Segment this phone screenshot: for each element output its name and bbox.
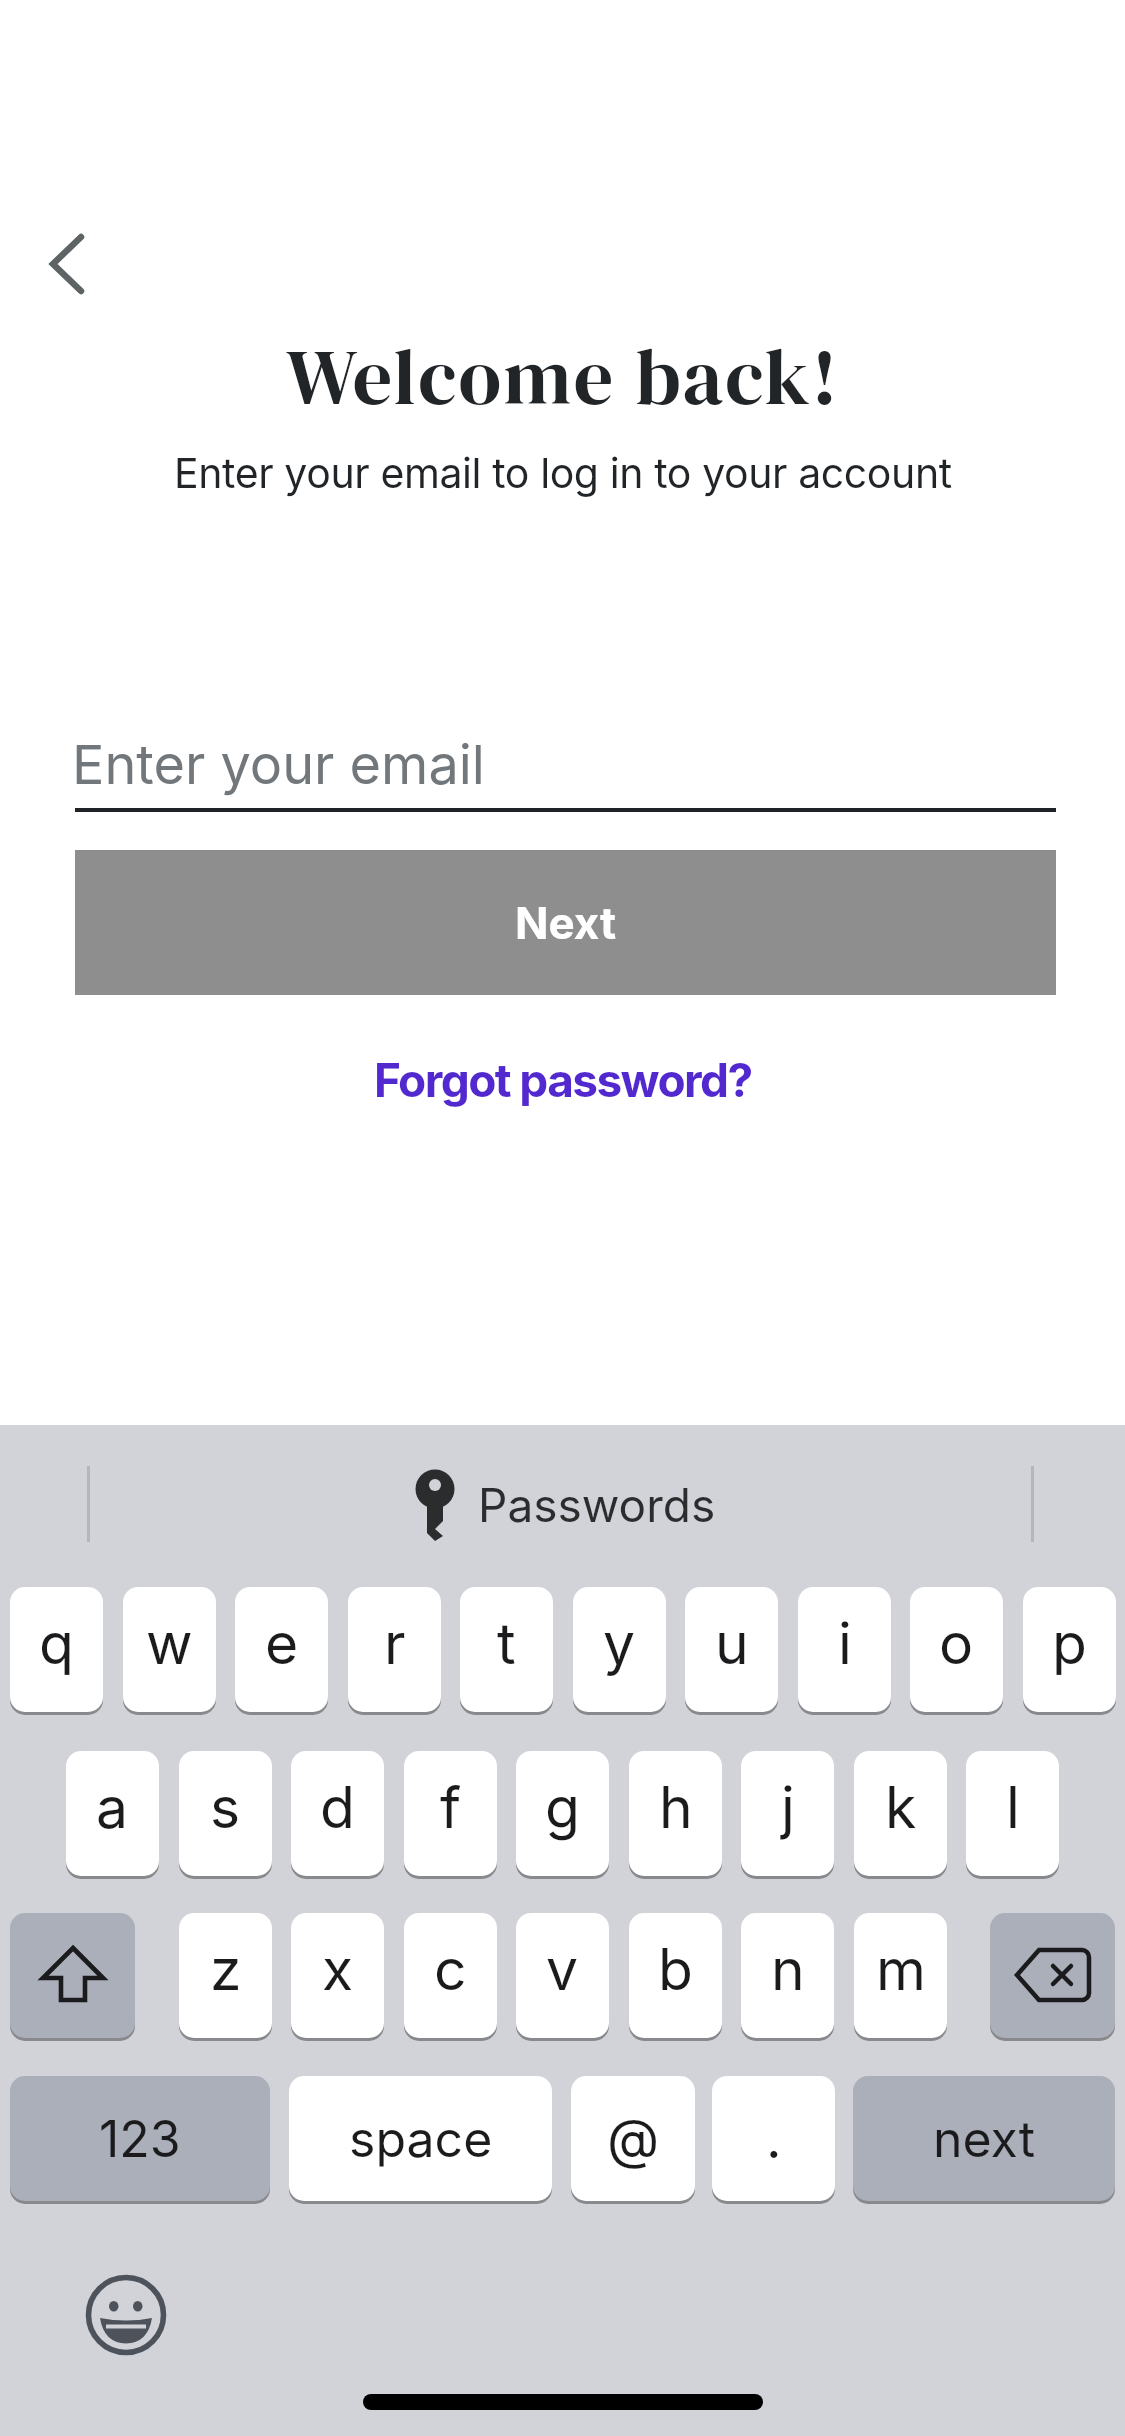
staticText: k bbox=[885, 1773, 917, 1842]
staticText: n bbox=[771, 1935, 805, 2004]
button[interactable]: u bbox=[685, 1587, 778, 1712]
staticText: c bbox=[434, 1935, 467, 2004]
button[interactable]: @ bbox=[571, 2076, 695, 2201]
button[interactable]: z bbox=[179, 1913, 272, 2038]
button[interactable]: x bbox=[291, 1913, 384, 2038]
staticText: y bbox=[603, 1609, 636, 1678]
staticText: space bbox=[349, 2109, 493, 2169]
button[interactable]: c bbox=[404, 1913, 497, 2038]
button[interactable]: k bbox=[854, 1751, 947, 1876]
button[interactable]: e bbox=[235, 1587, 328, 1712]
staticText: q bbox=[39, 1609, 74, 1678]
staticText: h bbox=[659, 1773, 693, 1842]
button[interactable]: Passwords bbox=[0, 1455, 1125, 1555]
button[interactable]: h bbox=[629, 1751, 722, 1876]
staticText: e bbox=[265, 1609, 299, 1678]
button[interactable]: y bbox=[573, 1587, 666, 1712]
staticText: t bbox=[497, 1609, 516, 1678]
staticText: 123 bbox=[99, 2109, 181, 2169]
button[interactable] bbox=[990, 1913, 1115, 2038]
button[interactable]: g bbox=[516, 1751, 609, 1876]
staticText: Welcome back! bbox=[286, 323, 840, 430]
staticText: v bbox=[546, 1935, 579, 2004]
button[interactable]: m bbox=[854, 1913, 947, 2038]
staticText: d bbox=[320, 1773, 355, 1842]
staticText: j bbox=[781, 1773, 795, 1842]
button[interactable]: p bbox=[1023, 1587, 1116, 1712]
button[interactable]: Enter your email bbox=[75, 720, 1056, 812]
button[interactable] bbox=[10, 1913, 135, 2038]
staticText: l bbox=[1006, 1773, 1020, 1842]
staticText: . bbox=[766, 2106, 782, 2171]
button[interactable] bbox=[30, 215, 110, 315]
button[interactable]: . bbox=[712, 2076, 835, 2201]
button[interactable]: s bbox=[179, 1751, 272, 1876]
staticText: s bbox=[210, 1773, 241, 1842]
staticText: x bbox=[322, 1935, 354, 2004]
staticText: b bbox=[658, 1935, 693, 2004]
button[interactable] bbox=[82, 2273, 170, 2361]
button[interactable]: next bbox=[853, 2076, 1115, 2201]
button[interactable]: space bbox=[289, 2076, 552, 2201]
staticText: m bbox=[876, 1935, 926, 2004]
staticText: Next bbox=[515, 896, 617, 949]
button[interactable]: d bbox=[291, 1751, 384, 1876]
button[interactable]: r bbox=[348, 1587, 441, 1712]
button[interactable]: t bbox=[460, 1587, 553, 1712]
staticText: w bbox=[146, 1609, 193, 1678]
button[interactable]: l bbox=[966, 1751, 1059, 1876]
button[interactable]: b bbox=[629, 1913, 722, 2038]
button[interactable]: Next bbox=[75, 850, 1056, 995]
button[interactable]: 123 bbox=[10, 2076, 270, 2201]
staticText: u bbox=[715, 1609, 749, 1678]
staticText: @ bbox=[607, 2106, 660, 2171]
button[interactable]: v bbox=[516, 1913, 609, 2038]
staticText: next bbox=[933, 2109, 1036, 2169]
button[interactable]: n bbox=[741, 1913, 834, 2038]
staticText: p bbox=[1052, 1609, 1087, 1678]
staticText: Enter your email to log in to your accou… bbox=[174, 448, 952, 498]
button[interactable]: Forgot password? bbox=[374, 1052, 752, 1108]
button[interactable]: q bbox=[10, 1587, 103, 1712]
button[interactable]: f bbox=[404, 1751, 497, 1876]
staticText: g bbox=[545, 1773, 580, 1842]
button[interactable]: j bbox=[741, 1751, 834, 1876]
button[interactable]: a bbox=[66, 1751, 159, 1876]
button[interactable]: i bbox=[798, 1587, 891, 1712]
staticText: o bbox=[939, 1609, 974, 1678]
staticText: Enter your email bbox=[72, 732, 485, 797]
staticText: r bbox=[384, 1609, 406, 1678]
button[interactable]: w bbox=[123, 1587, 216, 1712]
staticText: i bbox=[838, 1609, 852, 1678]
staticText: Passwords bbox=[478, 1477, 716, 1533]
button[interactable]: o bbox=[910, 1587, 1003, 1712]
staticText: a bbox=[96, 1773, 129, 1842]
staticText: z bbox=[210, 1935, 242, 2004]
staticText: f bbox=[440, 1773, 462, 1842]
